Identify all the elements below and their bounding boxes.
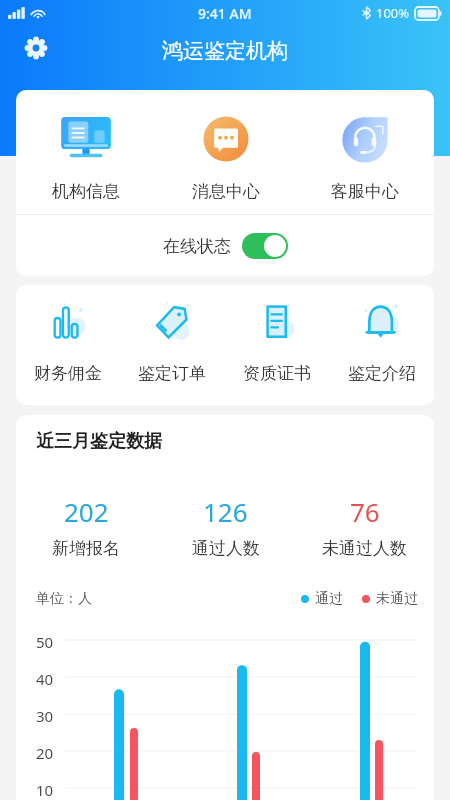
staticText: 未通过 <box>376 590 418 608</box>
staticText: 在线状态 <box>163 236 231 257</box>
staticText: 消息中心 <box>192 181 260 202</box>
staticText: 30 <box>36 706 54 726</box>
staticText: 100% <box>376 4 410 22</box>
staticText: 鉴定订单 <box>138 363 206 384</box>
staticText: 9:41 AM <box>198 4 252 23</box>
staticText: 50 <box>36 632 54 652</box>
staticText: 新增报名 <box>52 538 120 559</box>
button[interactable]: 202 <box>16 494 156 559</box>
button[interactable]: 客服中心 <box>295 116 434 202</box>
button[interactable]: 鉴定介绍 <box>329 299 434 384</box>
staticText: 通过 <box>315 590 343 608</box>
button[interactable]: 在线状态开关 <box>242 233 288 259</box>
staticText: 202 <box>64 494 109 529</box>
button[interactable]: 鉴定订单 <box>120 299 224 384</box>
staticText: 资质证书 <box>243 363 311 384</box>
staticText: 财务佣金 <box>34 363 102 384</box>
staticText: 单位：人 <box>36 590 92 608</box>
button[interactable]: 财务佣金 <box>16 299 120 384</box>
staticText: 客服中心 <box>331 181 399 202</box>
staticText: 126 <box>203 494 248 529</box>
button[interactable]: 消息中心 <box>156 116 295 202</box>
staticText: 机构信息 <box>52 181 120 202</box>
staticText: 近三月鉴定数据 <box>36 430 162 453</box>
staticText: 通过人数 <box>192 538 260 559</box>
button[interactable]: 设置 <box>17 29 55 67</box>
button[interactable]: 资质证书 <box>224 299 329 384</box>
button[interactable]: 126 <box>156 494 295 559</box>
staticText: 40 <box>36 669 54 689</box>
staticText: 鉴定介绍 <box>348 363 416 384</box>
staticText: 20 <box>36 743 54 763</box>
staticText: 10 <box>36 780 54 800</box>
button[interactable]: 76 <box>295 494 434 559</box>
staticText: 76 <box>350 494 380 529</box>
staticText: 未通过人数 <box>322 538 407 559</box>
staticText: 鸿运鉴定机构 <box>162 38 288 64</box>
button[interactable]: 机构信息 <box>16 116 156 202</box>
